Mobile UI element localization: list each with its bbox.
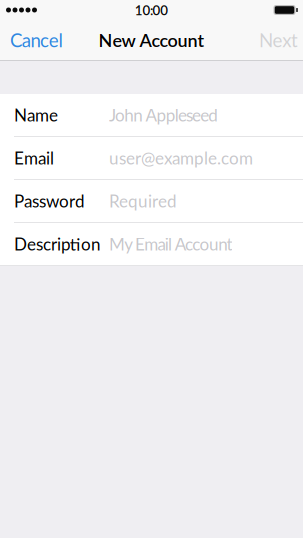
button[interactable]: Cancel	[0, 20, 72, 60]
staticText: Password	[14, 191, 85, 211]
staticText: Required	[109, 191, 177, 211]
staticText: Email	[14, 148, 54, 168]
staticText: John Appleseed	[109, 105, 218, 125]
staticText: user@example.com	[109, 148, 253, 168]
staticText: Next	[259, 29, 298, 51]
button[interactable]: Password	[0, 180, 303, 222]
button[interactable]: Email	[0, 137, 303, 179]
staticText: Name	[14, 105, 58, 125]
staticText: New Account	[98, 29, 204, 51]
staticText: 10:00	[135, 2, 168, 18]
button[interactable]: Description	[0, 223, 303, 265]
button[interactable]: Name	[0, 94, 303, 136]
button[interactable]: Next	[249, 20, 303, 60]
staticText: Cancel	[10, 29, 62, 51]
staticText: My Email Account	[109, 234, 232, 254]
staticText: Description	[14, 234, 101, 254]
